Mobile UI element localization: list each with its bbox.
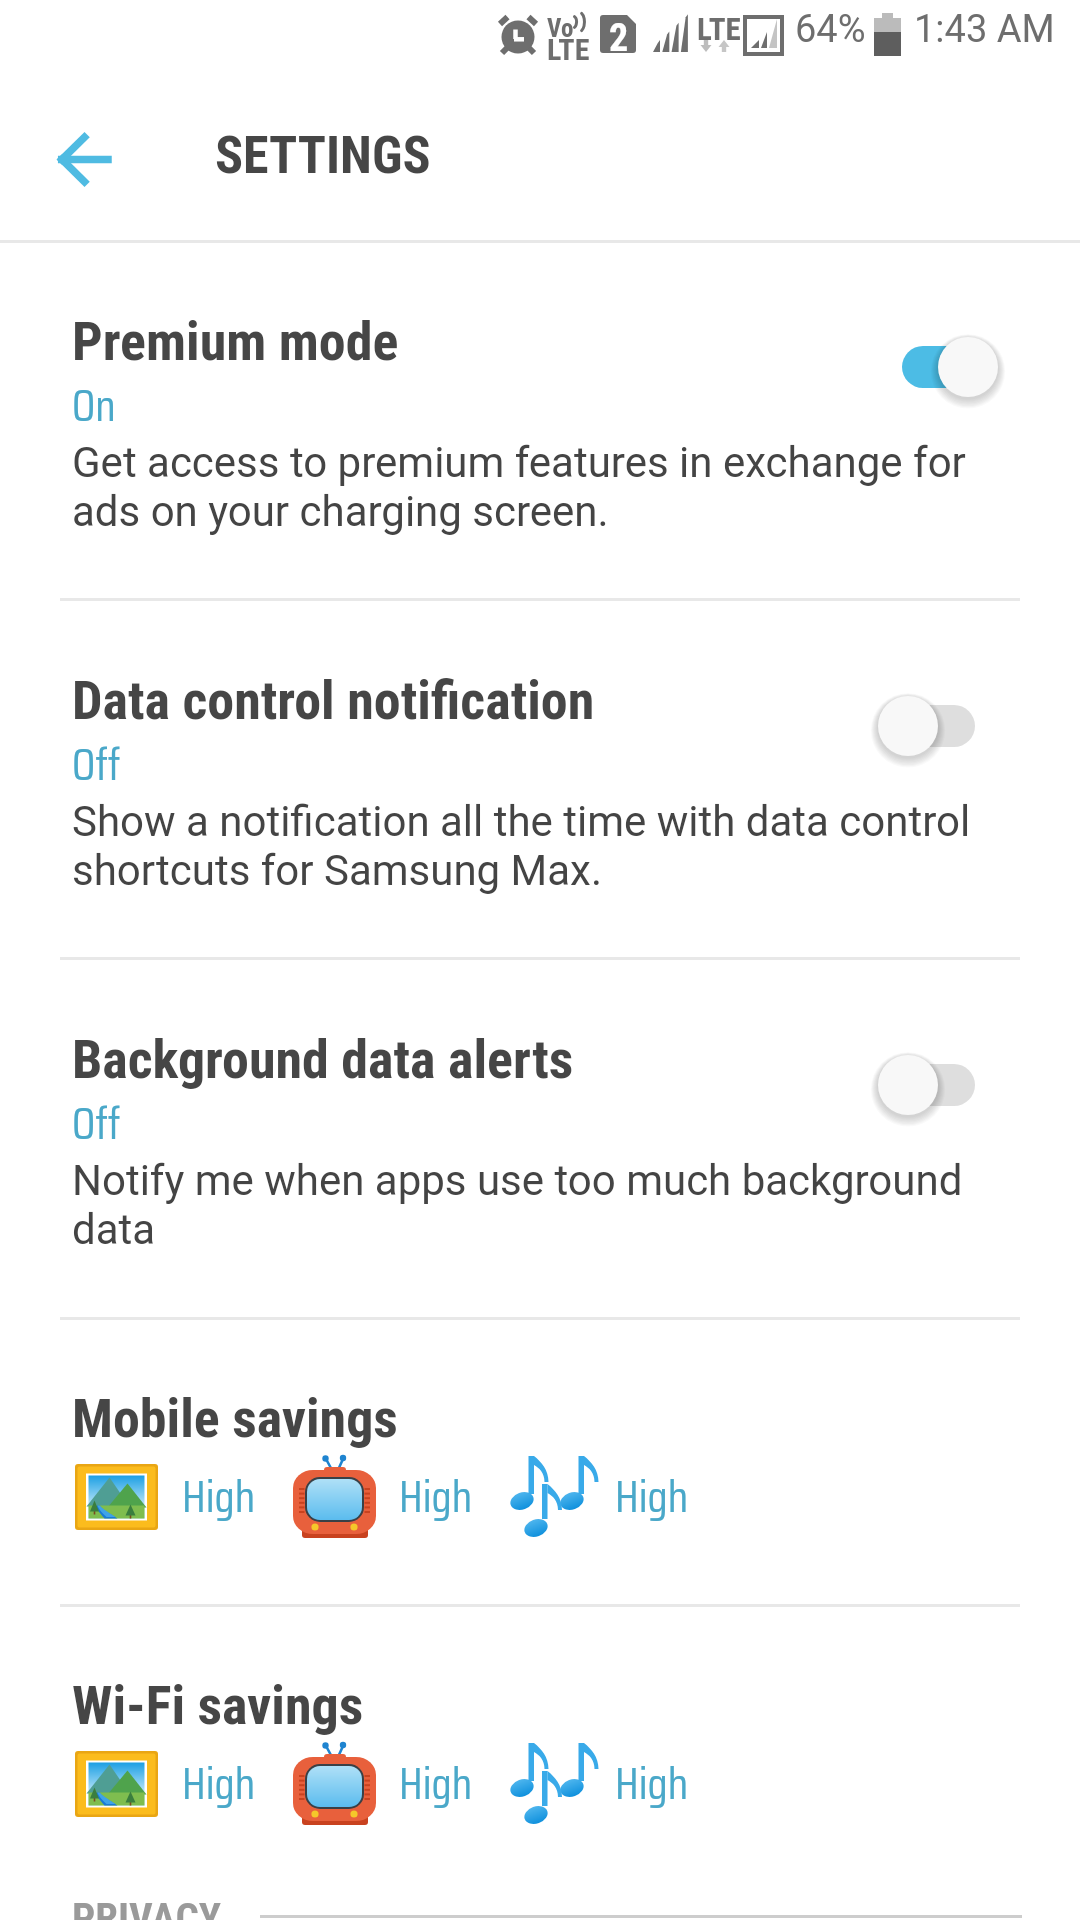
staticText: Notify me when apps use too much backgro… — [72, 1156, 963, 1205]
staticText: Mobile savings — [72, 1387, 398, 1450]
staticText: Vo — [547, 14, 574, 43]
button[interactable]: Off — [872, 1049, 1012, 1133]
button[interactable]: High — [507, 1452, 695, 1544]
staticText: Off — [72, 729, 121, 800]
staticText: data — [72, 1205, 156, 1254]
staticText: 2 — [609, 16, 629, 61]
button[interactable]: Data control notification — [0, 600, 1080, 957]
button[interactable]: High — [73, 1452, 262, 1544]
staticText: Get access to premium features in exchan… — [72, 438, 966, 487]
button[interactable]: On — [872, 331, 1012, 415]
button[interactable]: High — [291, 1739, 479, 1831]
staticText: 64% — [795, 7, 866, 52]
staticText: LTE — [547, 32, 590, 67]
button[interactable]: High — [291, 1452, 479, 1544]
staticText: Data control notification — [72, 669, 595, 732]
staticText: Premium mode — [72, 310, 399, 373]
staticText: High — [615, 1748, 689, 1819]
staticText: SETTINGS — [215, 125, 431, 186]
button[interactable]: Back — [13, 89, 153, 229]
staticText: High — [182, 1748, 256, 1819]
button[interactable]: High — [73, 1739, 262, 1831]
staticText: PRIVACY — [72, 1894, 222, 1920]
staticText: On — [72, 370, 116, 441]
staticText: High — [182, 1461, 256, 1532]
staticText: High — [399, 1461, 473, 1532]
staticText: Off — [72, 1088, 121, 1159]
button[interactable]: Background data alerts — [0, 959, 1080, 1316]
staticText: High — [399, 1748, 473, 1819]
staticText: shortcuts for Samsung Max. — [72, 846, 603, 895]
button[interactable]: Premium mode — [0, 241, 1080, 598]
staticText: Wi-Fi savings — [72, 1674, 364, 1737]
staticText: Background data alerts — [72, 1028, 574, 1091]
staticText: LTE — [697, 11, 741, 47]
staticText: 1:43 AM — [914, 7, 1055, 52]
staticText: Show a notification all the time with da… — [72, 797, 971, 846]
button[interactable]: High — [507, 1739, 695, 1831]
staticText: ads on your charging screen. — [72, 487, 609, 536]
staticText: High — [615, 1461, 689, 1532]
button[interactable]: Off — [872, 690, 1012, 774]
